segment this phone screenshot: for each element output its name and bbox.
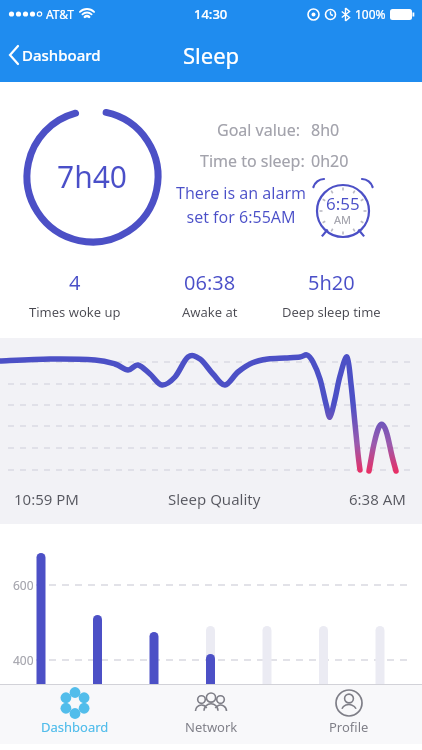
staticText: Times woke up: [29, 303, 121, 321]
staticText: Awake at: [182, 303, 238, 321]
staticText: AM: [334, 212, 352, 227]
button[interactable]: Profile: [294, 686, 404, 742]
staticText: 0h20: [311, 150, 349, 172]
staticText: 600: [13, 577, 34, 593]
staticText: 100%: [355, 6, 386, 22]
staticText: AT&T: [46, 6, 74, 22]
button[interactable]: Dashboard: [20, 686, 130, 742]
staticText: Sleep Quality: [168, 489, 261, 509]
staticText: 5h20: [308, 269, 355, 296]
staticText: Dashboard: [22, 45, 101, 65]
staticText: 14:30: [194, 5, 228, 23]
staticText: 6:38 AM: [349, 489, 406, 509]
staticText: 6:55: [326, 192, 360, 215]
staticText: Goal value:: [217, 119, 301, 141]
staticText: Profile: [329, 718, 369, 736]
button[interactable]: Network: [156, 686, 266, 742]
staticText: 7h40: [57, 156, 128, 197]
staticText: 4: [69, 269, 81, 296]
staticText: Deep sleep time: [282, 303, 381, 321]
staticText: Dashboard: [41, 718, 109, 736]
button[interactable]: Dashboard: [8, 45, 101, 65]
staticText: 8h0: [311, 119, 340, 141]
staticText: 400: [13, 652, 34, 668]
staticText: Network: [185, 718, 238, 736]
staticText: There is an alarm set for 6:55AM: [166, 182, 316, 228]
staticText: Time to sleep:: [200, 150, 305, 172]
staticText: 06:38: [184, 269, 236, 296]
staticText: Sleep: [183, 40, 240, 70]
staticText: 10:59 PM: [14, 489, 79, 509]
